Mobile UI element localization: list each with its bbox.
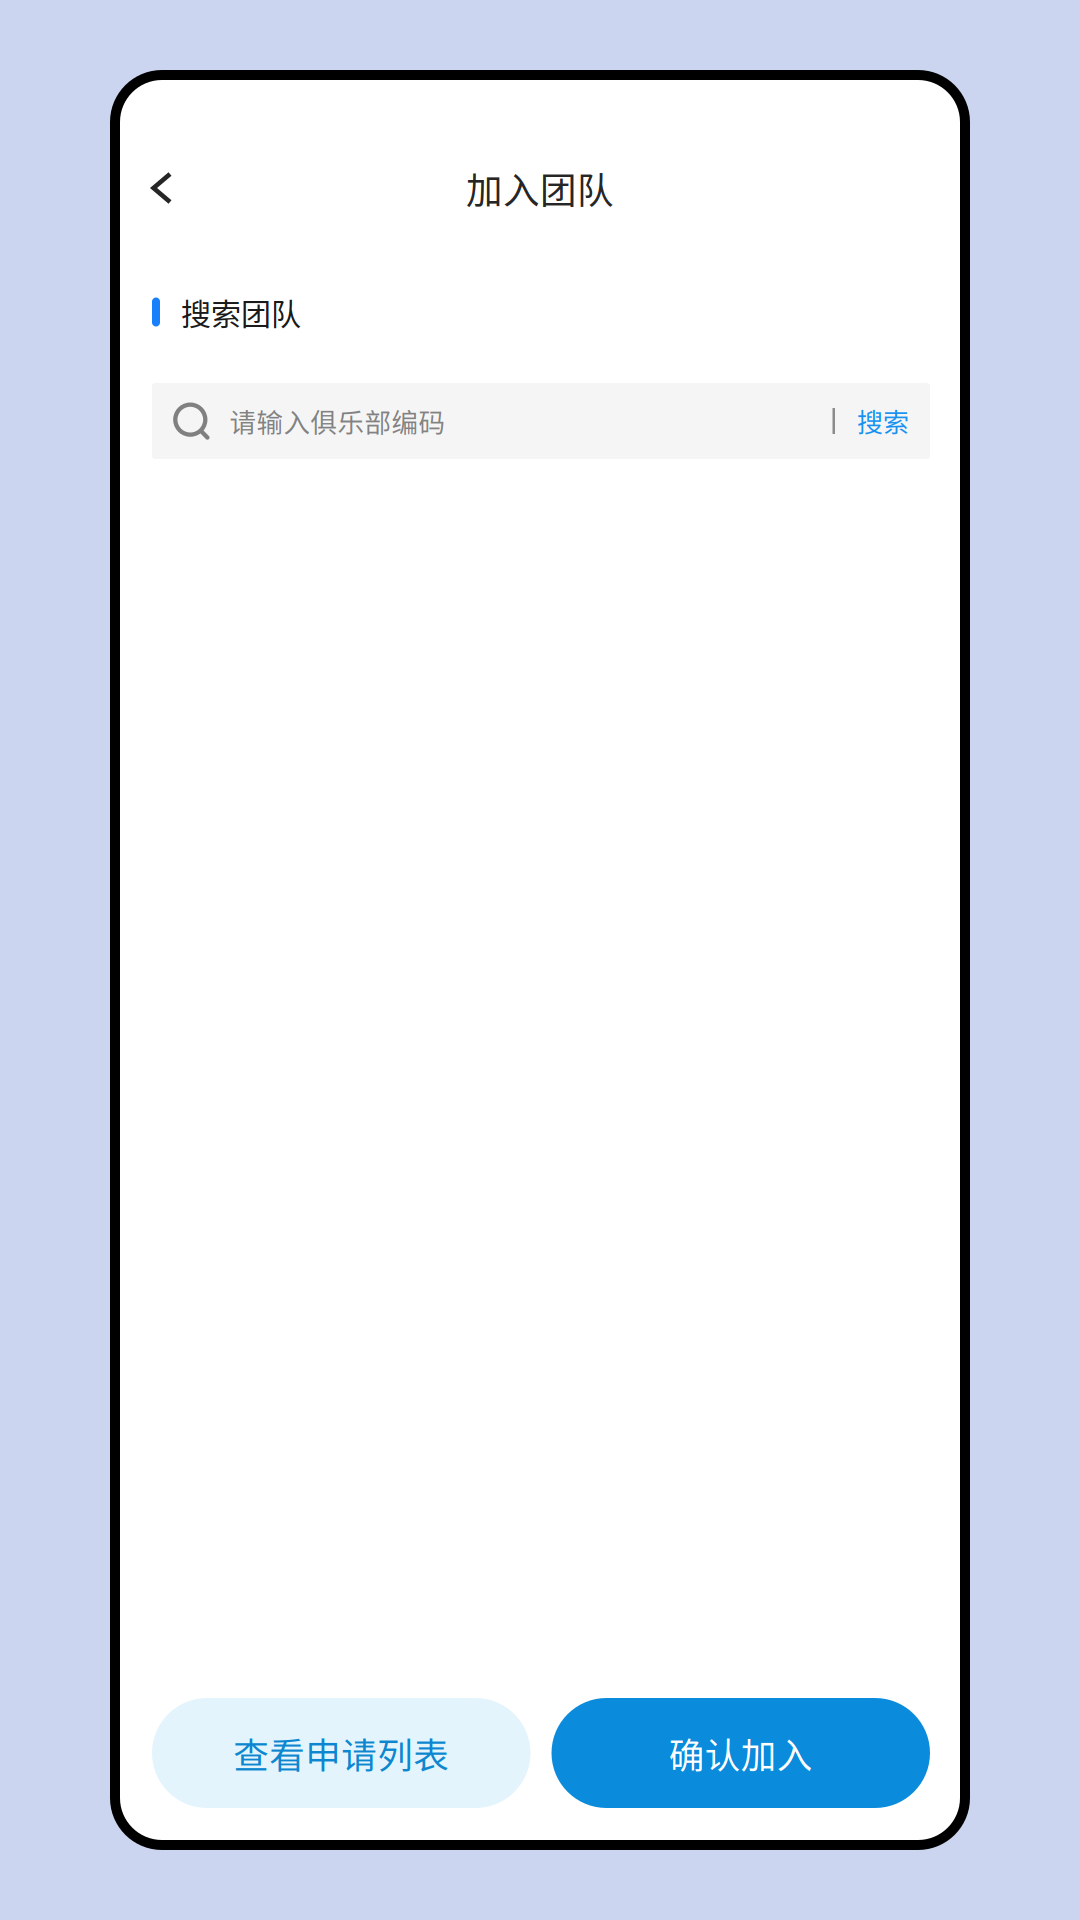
staticText: 确认加入 xyxy=(669,1727,813,1779)
button[interactable]: 确认加入 xyxy=(551,1698,930,1808)
staticText: 搜索团队 xyxy=(181,290,301,334)
staticText: 搜索 xyxy=(857,402,909,440)
staticText: 加入团队 xyxy=(466,162,614,214)
button[interactable]: Back xyxy=(120,149,202,226)
staticText: 请输入俱乐部编码 xyxy=(229,402,445,440)
staticText: 查看申请列表 xyxy=(233,1727,449,1779)
button[interactable]: 查看申请列表 xyxy=(152,1698,530,1808)
button[interactable]: 搜索 xyxy=(835,384,930,458)
